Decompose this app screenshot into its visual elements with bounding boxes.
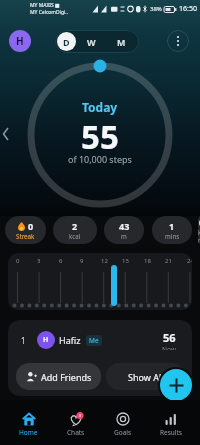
staticText: Add Friends xyxy=(41,371,92,383)
staticText: 43 xyxy=(119,220,130,232)
staticText: 0 xyxy=(28,220,34,232)
button[interactable]: D xyxy=(57,32,76,51)
staticText: 0 xyxy=(199,216,200,228)
staticText: W xyxy=(87,36,96,48)
button[interactable]: 43 xyxy=(104,216,144,244)
staticText: Show All xyxy=(128,371,164,383)
staticText: H xyxy=(43,335,49,345)
button[interactable]: W xyxy=(76,36,106,48)
staticText: mins xyxy=(165,232,180,240)
staticText: km xyxy=(198,228,200,244)
staticText: 0 xyxy=(16,257,20,265)
staticText: 12 xyxy=(101,257,108,265)
button[interactable] xyxy=(167,30,189,52)
staticText: Hafiz xyxy=(59,334,81,346)
button[interactable]: D xyxy=(55,30,139,53)
button[interactable]: 0 xyxy=(5,216,46,244)
button[interactable]: Results xyxy=(147,400,195,445)
staticText: 21 xyxy=(165,257,172,265)
staticText: Home xyxy=(19,428,38,437)
staticText: Me xyxy=(89,336,99,345)
staticText: m xyxy=(121,232,127,240)
staticText: Today xyxy=(82,99,118,115)
staticText: 16:50 xyxy=(179,4,197,14)
staticText: 56 xyxy=(163,330,176,345)
button[interactable]: Home xyxy=(5,400,52,445)
staticText: 2 xyxy=(72,220,78,232)
button[interactable]: M xyxy=(106,36,137,48)
staticText: 3 xyxy=(37,257,41,265)
button[interactable]: Goals xyxy=(99,400,147,445)
staticText: 9 xyxy=(80,257,84,265)
staticText: of 10,000 steps xyxy=(68,153,132,165)
staticText: Goals xyxy=(114,428,132,437)
staticText: MY MAXIS ■ xyxy=(30,2,60,9)
button[interactable]: H xyxy=(9,30,31,52)
button[interactable]: 1 xyxy=(152,216,192,244)
button[interactable] xyxy=(1,126,11,142)
staticText: 1 xyxy=(169,220,175,232)
staticText: 38% xyxy=(150,5,162,13)
staticText: 15 xyxy=(122,257,129,265)
staticText: M xyxy=(117,36,126,48)
button[interactable] xyxy=(160,369,192,401)
staticText: Now xyxy=(162,345,176,350)
staticText: 18 xyxy=(144,257,151,265)
button[interactable]: Add Friends xyxy=(16,363,101,390)
staticText: 6 xyxy=(59,257,63,265)
button[interactable]: Chats xyxy=(52,400,99,445)
staticText: kcal xyxy=(69,232,81,240)
staticText: 1 xyxy=(21,335,26,346)
staticText: 24 xyxy=(187,257,192,265)
staticText: MY CelcomDigi.. xyxy=(30,9,69,16)
staticText: D xyxy=(63,36,70,48)
button[interactable]: 0 xyxy=(8,253,192,310)
button[interactable]: 1 xyxy=(8,330,192,350)
staticText: 55 xyxy=(81,114,119,159)
staticText: Streak xyxy=(16,232,35,240)
staticText: H xyxy=(16,34,24,48)
staticText: Results xyxy=(160,428,182,437)
staticText: Chats xyxy=(67,428,85,437)
button[interactable]: 0 xyxy=(198,216,200,244)
button[interactable]: 2 xyxy=(53,216,97,244)
button[interactable]: Show All xyxy=(106,363,185,390)
